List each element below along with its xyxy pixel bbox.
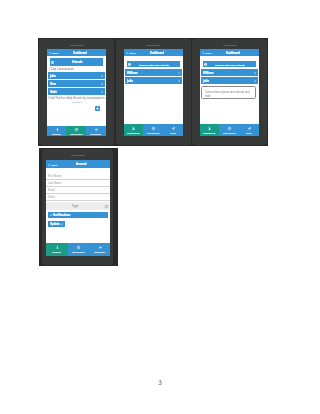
staticText: Notifications xyxy=(53,213,71,217)
button[interactable]: Matt xyxy=(48,88,105,95)
staticText: Dashboard xyxy=(72,250,85,253)
staticText: Menu xyxy=(205,51,212,54)
staticText: Matt xyxy=(50,90,57,94)
button[interactable]: Type xyxy=(46,202,110,210)
button[interactable]: Update xyxy=(48,221,65,227)
button[interactable]: Dashboard xyxy=(143,124,163,136)
button[interactable]: William xyxy=(125,69,182,76)
staticText: Update xyxy=(50,222,60,226)
staticText: Other xyxy=(48,195,56,199)
staticText: Tina xyxy=(50,82,56,86)
staticText: Julia xyxy=(127,79,134,83)
staticText: 12.34 kW xyxy=(47,100,106,103)
staticText: William xyxy=(203,71,214,75)
staticText: 7-Day Consumption xyxy=(49,67,74,71)
button[interactable]: Julia xyxy=(125,77,182,84)
staticText: Type xyxy=(72,204,79,208)
button[interactable]: Messages xyxy=(89,243,110,256)
button[interactable]: Downloads xyxy=(200,124,219,136)
staticText: Send xyxy=(170,131,176,134)
button[interactable]: Friends with 4pm activity xyxy=(203,61,256,67)
staticText: Dashboard xyxy=(226,51,241,55)
button[interactable]: Messages xyxy=(86,126,106,136)
staticText: Menu xyxy=(129,51,136,54)
button[interactable]: William xyxy=(201,69,258,76)
staticText: Dashboard xyxy=(147,131,160,134)
staticText: Friends with 4pm activity xyxy=(139,63,170,66)
staticText: Account xyxy=(52,132,62,135)
button[interactable]: Menu xyxy=(49,51,59,54)
button[interactable]: Tina xyxy=(48,80,105,87)
staticText: Email xyxy=(48,188,55,192)
button[interactable]: Julia xyxy=(201,77,258,84)
staticText: Menu xyxy=(52,51,59,54)
staticText: Dashboard xyxy=(223,131,236,134)
staticText: Connection request sent via text and mai… xyxy=(205,90,253,98)
button[interactable]: Add xyxy=(95,106,100,111)
button[interactable]: Downloads xyxy=(124,124,143,136)
staticText: Friends with 4pm activity xyxy=(215,63,246,66)
button[interactable]: Account xyxy=(47,126,66,136)
button[interactable]: Dashboard xyxy=(66,126,86,136)
staticText: Click/Tab for daily electricity consumpt… xyxy=(47,96,106,100)
staticText: Account xyxy=(76,162,87,166)
button[interactable]: Dashboard xyxy=(219,124,239,136)
button[interactable]: Friends with 4pm activity xyxy=(127,61,180,67)
button[interactable]: Send xyxy=(239,124,259,136)
button[interactable]: Menu xyxy=(202,51,212,54)
staticText: 3 xyxy=(158,378,163,388)
button[interactable]: Friends xyxy=(50,58,103,66)
staticText: Downloads xyxy=(127,131,140,134)
staticText: Account xyxy=(52,250,62,253)
button[interactable]: Menu xyxy=(126,51,136,54)
staticText: Messages xyxy=(90,132,102,135)
staticText: Last Name xyxy=(48,181,62,185)
staticText: Friends xyxy=(72,60,83,64)
staticText: Dashboard xyxy=(150,51,165,55)
button[interactable]: Notifications xyxy=(48,212,108,218)
staticText: Dashboard xyxy=(73,51,88,55)
button[interactable]: Jake xyxy=(48,72,105,79)
staticText: Send xyxy=(246,131,252,134)
button[interactable]: Send xyxy=(163,124,183,136)
button[interactable]: Dashboard xyxy=(68,243,89,256)
staticText: Julia xyxy=(203,79,210,83)
staticText: Messages xyxy=(94,250,106,253)
staticText: Dashboard xyxy=(70,132,83,135)
staticText: William xyxy=(127,71,138,75)
staticText: Jake xyxy=(50,74,57,78)
button[interactable]: Account xyxy=(46,243,68,256)
button[interactable]: Menu xyxy=(48,163,58,166)
staticText: Menu xyxy=(51,163,58,166)
staticText: Downloads xyxy=(203,131,216,134)
staticText: First Name xyxy=(48,174,62,178)
